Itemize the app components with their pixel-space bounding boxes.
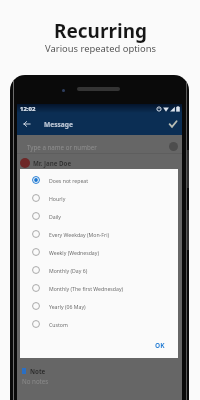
staticText: Does not repeat xyxy=(49,177,89,184)
button[interactable]: Back xyxy=(17,113,37,135)
staticText: Type a name or number xyxy=(27,143,97,151)
button[interactable]: Custom xyxy=(20,315,178,333)
staticText: 12:02 xyxy=(20,105,36,113)
staticText: Note xyxy=(30,367,46,375)
button[interactable]: Every Weekday (Mon-Fri) xyxy=(20,225,178,243)
staticText: OK xyxy=(155,341,165,350)
button[interactable]: Yearly (06 May) xyxy=(20,297,178,315)
button[interactable]: Does not repeat xyxy=(20,171,178,189)
staticText: Custom xyxy=(49,321,68,328)
staticText: No notes xyxy=(22,377,49,385)
staticText: Every Weekday (Mon-Fri) xyxy=(49,231,110,238)
button[interactable]: Monthly (Day 6) xyxy=(20,261,178,279)
staticText: Message xyxy=(44,120,73,129)
button[interactable]: OK xyxy=(152,339,168,352)
staticText: Recurring xyxy=(54,18,147,44)
button[interactable]: Daily xyxy=(20,207,178,225)
button[interactable]: Weekly (Wednesday) xyxy=(20,243,178,261)
staticText: Daily xyxy=(49,213,62,220)
button[interactable]: Done xyxy=(164,113,182,135)
staticText: Weekly (Wednesday) xyxy=(49,249,99,256)
staticText: Monthly (Day 6) xyxy=(49,267,88,274)
staticText: Various repeated options xyxy=(45,42,156,55)
staticText: Monthly (The first Wednesday) xyxy=(49,285,124,292)
button[interactable]: Monthly (The first Wednesday) xyxy=(20,279,178,297)
staticText: Hourly xyxy=(49,195,66,202)
staticText: Yearly (06 May) xyxy=(49,303,86,310)
staticText: Mr. Jane Doe xyxy=(33,159,72,167)
button[interactable]: Hourly xyxy=(20,189,178,207)
